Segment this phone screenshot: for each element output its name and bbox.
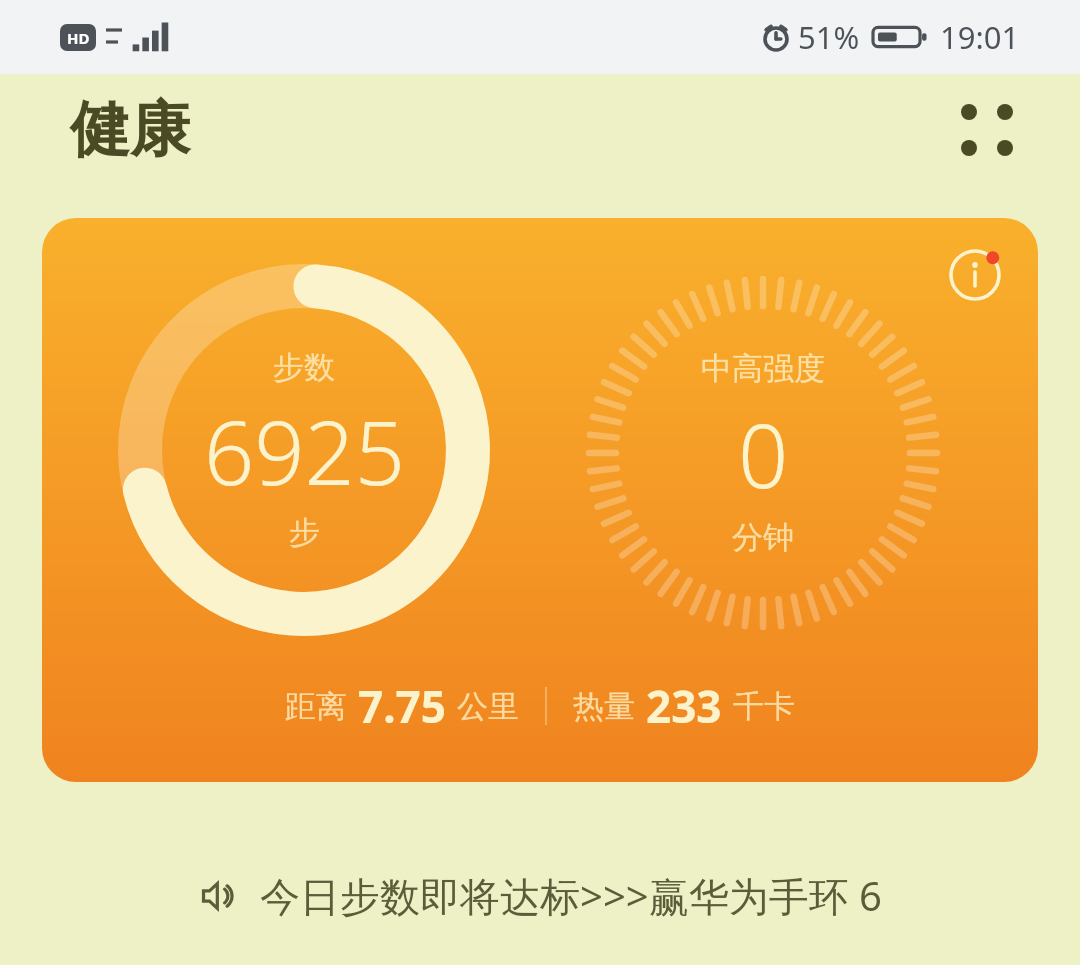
staticText: 健康: [70, 92, 190, 168]
button[interactable]: 今日步数即将达标>>>赢华为手环 6: [0, 868, 1080, 923]
staticText: 233: [646, 676, 722, 736]
staticText: 分钟: [732, 518, 794, 557]
staticText: 距离: [285, 687, 347, 726]
staticText: 51%: [798, 16, 860, 58]
button[interactable]: Info: [936, 236, 1014, 314]
staticText: 今日步数即将达标>>>赢华为手环 6: [260, 868, 882, 923]
staticText: 热量: [573, 687, 635, 726]
staticText: 中高强度: [701, 349, 825, 388]
staticText: 7.75: [358, 676, 446, 736]
staticText: 步数: [273, 348, 335, 387]
staticText: 步: [289, 513, 320, 552]
staticText: 19:01: [940, 16, 1020, 58]
staticText: 公里: [457, 687, 519, 726]
button[interactable]: Info: [42, 218, 1038, 782]
staticText: 千卡: [733, 687, 795, 726]
button[interactable]: More options: [942, 85, 1032, 175]
staticText: 0: [738, 394, 789, 514]
staticText: HD: [67, 28, 90, 48]
staticText: 6925: [204, 391, 405, 511]
